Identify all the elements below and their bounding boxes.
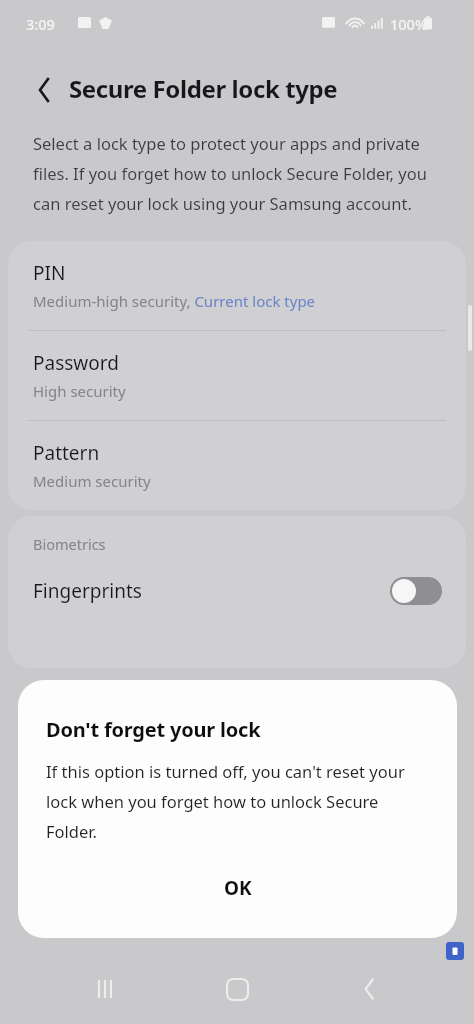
button[interactable]: Pattern bbox=[8, 421, 466, 510]
staticText: Don't forget your lock bbox=[46, 716, 261, 743]
staticText: 100% bbox=[390, 14, 428, 34]
staticText: PIN bbox=[33, 260, 66, 286]
button[interactable]: Fingerprints toggle bbox=[390, 577, 442, 605]
button[interactable]: PIN bbox=[8, 241, 466, 330]
staticText: Password bbox=[33, 350, 119, 376]
button[interactable]: Home bbox=[208, 960, 266, 1018]
staticText: Fingerprints bbox=[33, 578, 142, 604]
staticText: If this option is turned off, you can't … bbox=[46, 760, 433, 842]
button[interactable]: Back bbox=[341, 960, 399, 1018]
staticText: Biometrics bbox=[33, 534, 106, 554]
staticText: Pattern bbox=[33, 440, 100, 466]
staticText: High security bbox=[33, 381, 126, 401]
button[interactable]: Fingerprints bbox=[8, 554, 466, 628]
staticText: Medium-high security, Current lock type bbox=[33, 291, 316, 311]
button[interactable]: Recents bbox=[75, 960, 133, 1018]
staticText: OK bbox=[224, 875, 252, 901]
staticText: Medium security bbox=[33, 471, 151, 491]
button[interactable]: Back bbox=[24, 70, 64, 110]
staticText: 3:09 bbox=[26, 14, 55, 34]
button[interactable]: OK bbox=[18, 860, 457, 916]
button[interactable]: Password bbox=[8, 331, 466, 420]
staticText: Secure Folder lock type bbox=[69, 72, 338, 105]
staticText: Select a lock type to protect your apps … bbox=[33, 132, 440, 214]
